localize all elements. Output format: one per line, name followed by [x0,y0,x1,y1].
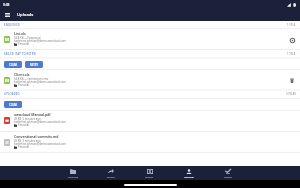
staticText: RETRY [30,63,39,66]
staticText: Uploads [17,12,34,18]
staticText: 54.8 KB — Enqueued [14,36,41,40]
staticText: katherine.johnson@demo.owncloud.com [14,142,66,146]
staticText: ⋮ [32,146,35,149]
staticText: Personal [68,175,79,178]
button[interactable]: CLEAR [4,101,22,108]
staticText: 49 KB, 3 minutes ago [14,139,41,143]
button[interactable]: Spaces [130,166,169,180]
button[interactable]: Uploads [169,166,208,180]
staticText: Personal [18,42,30,46]
button[interactable]: owncloud Manual.pdf [0,110,300,131]
staticText: Client.xls [14,72,30,77]
staticText: Conventional commits.md [14,134,59,139]
staticText: ⋮ [32,124,35,127]
staticText: ENQUEUED [4,23,21,27]
staticText: 54.8 KB — connection error [14,77,49,81]
staticText: katherine.johnson@demo.owncloud.com [14,39,66,43]
staticText: List.xls [14,31,26,36]
button[interactable]: List.xls [0,29,300,50]
staticText: CLEAR [9,103,18,106]
button[interactable]: Delete upload [287,75,297,85]
button[interactable]: UPLOADED [4,90,296,98]
staticText: 9:38 [3,3,10,7]
staticText: FAILED (TAP TO RETRY) [4,52,37,56]
staticText: Offline [224,175,232,178]
staticText: ⋮ [32,43,35,46]
button[interactable]: FAILED (TAP TO RETRY) [4,50,296,58]
staticText: ⋮ [32,84,35,87]
button[interactable]: Personal [54,166,92,180]
staticText: Personal [18,83,30,87]
staticText: 1 FILE [287,52,296,56]
staticText: Spaces [145,175,154,178]
staticText: CLEAR [9,63,18,66]
button[interactable]: CLEAR [4,61,22,68]
staticText: Personal [18,123,30,127]
staticText: owncloud Manual.pdf [14,112,51,117]
button[interactable]: ENQUEUED [4,21,296,29]
staticText: 1 FILE [287,23,296,27]
staticText: Personal [18,145,30,149]
button[interactable]: Open navigation menu [0,9,14,21]
staticText: 49 KB, 2 minutes ago [14,117,41,121]
staticText: 3 FILES [286,92,296,96]
button[interactable]: Conventional commits.md [0,132,300,153]
staticText: UPLOADED [4,92,20,96]
button[interactable]: Shares [92,166,130,180]
staticText: katherine.johnson@demo.owncloud.com [14,80,66,84]
button[interactable]: Offline [208,166,247,180]
button[interactable]: Cancel upload [287,35,297,45]
button[interactable]: Client.xls [0,70,300,90]
staticText: katherine.johnson@demo.owncloud.com [14,120,66,124]
button[interactable]: RETRY [25,61,43,68]
staticText: Shares [107,175,115,178]
staticText: Uploads [184,175,194,178]
